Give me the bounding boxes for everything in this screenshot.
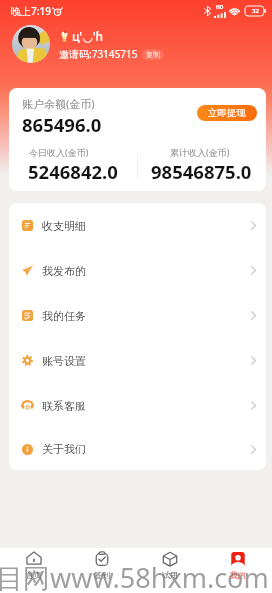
button[interactable]: 我的任务 [9, 293, 266, 338]
staticText: 今日收入(金币) [29, 146, 89, 158]
staticText: 865496.0 [22, 112, 102, 137]
staticText: 累计收入(金币) [170, 146, 230, 158]
staticText: 32 [252, 7, 259, 15]
staticText: 5246842.0 [28, 159, 118, 184]
button[interactable]: 联系客服 [9, 383, 266, 428]
button[interactable]: 签到 [68, 548, 136, 593]
button[interactable]: 立即提现 [197, 105, 257, 121]
button[interactable]: 首页 [0, 548, 68, 593]
staticText: 复制 [146, 50, 160, 59]
staticText: ц'◡'ɦ [72, 28, 104, 44]
button[interactable]: 关于我们 [9, 428, 266, 470]
staticText: 98546875.0 [151, 159, 252, 184]
staticText: 账号设置 [42, 354, 86, 368]
staticText: 关于我们 [42, 442, 86, 456]
staticText: 账户余额(金币) [22, 96, 95, 111]
staticText: 收支明细 [42, 219, 86, 233]
button[interactable]: 我的 [204, 548, 272, 593]
staticText: 试用 [162, 570, 178, 580]
button[interactable]: 复制 [142, 49, 164, 60]
button[interactable]: 收支明细 [9, 203, 266, 248]
staticText: 邀请码:73145715 [59, 47, 138, 61]
staticText: 首页 [26, 570, 42, 580]
button[interactable]: 我发布的 [9, 248, 266, 293]
button[interactable]: 账号设置 [9, 338, 266, 383]
staticText: 签到 [94, 570, 110, 580]
staticText: 立即提现 [208, 107, 246, 119]
staticText: 我发布的 [42, 264, 86, 278]
staticText: 我的 [230, 570, 246, 580]
staticText: 目网www.58hxm.com [0, 559, 268, 593]
staticText: 我的任务 [42, 309, 86, 323]
staticText: 晚上7:19 [11, 4, 51, 18]
staticText: HD [216, 4, 224, 11]
button[interactable]: 试用 [136, 548, 204, 593]
staticText: 联系客服 [42, 399, 86, 413]
